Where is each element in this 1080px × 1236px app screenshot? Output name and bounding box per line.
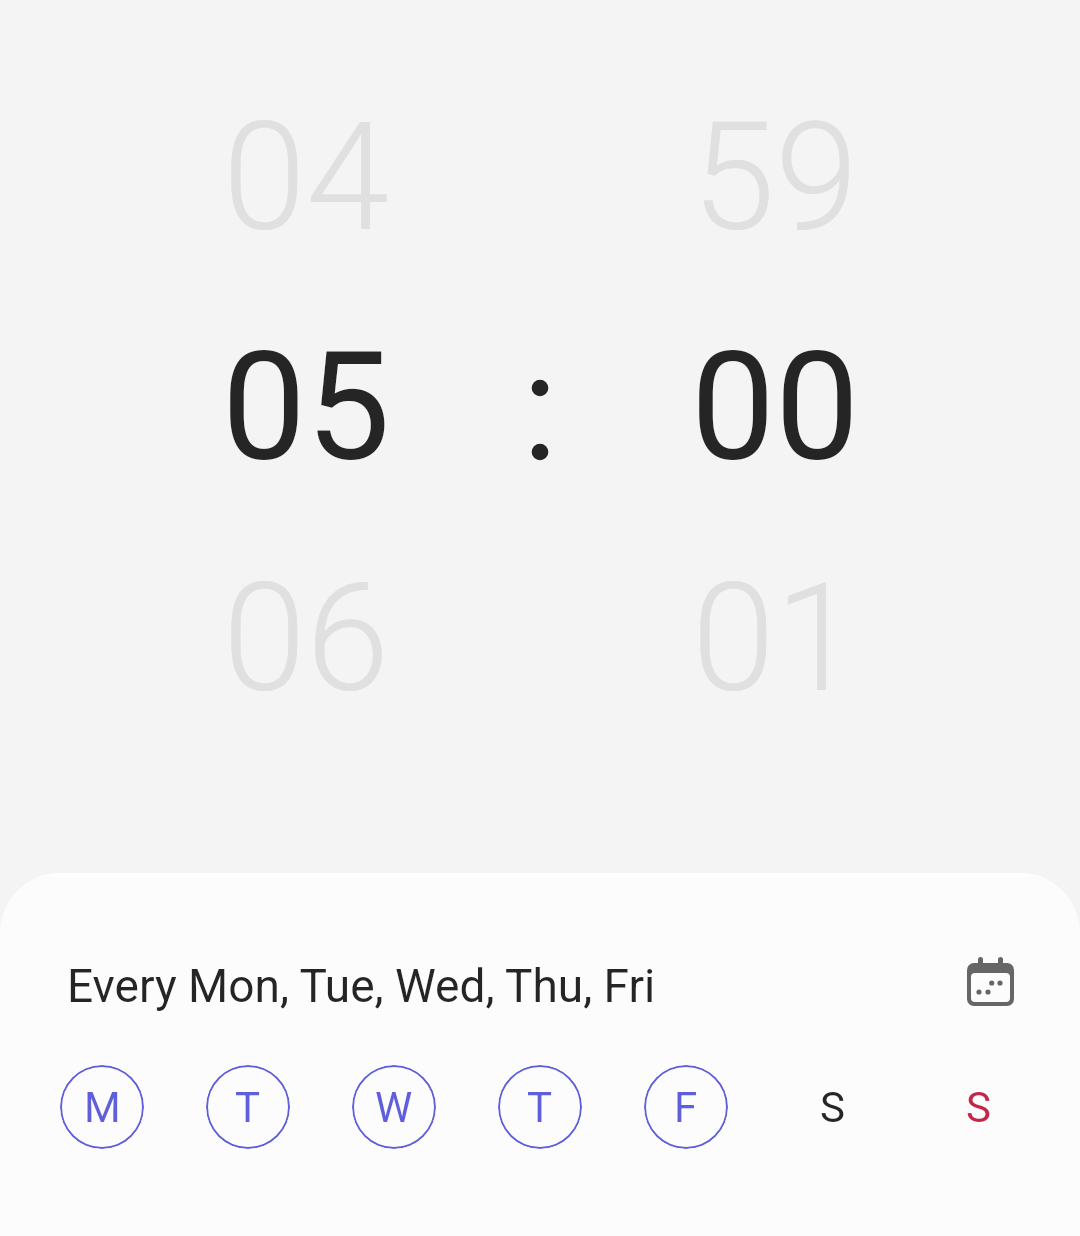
button[interactable]: Monday [60, 1065, 144, 1149]
staticText: T [235, 1083, 261, 1132]
staticText: W [375, 1083, 413, 1132]
staticText: 59 [575, 90, 975, 266]
button[interactable]: Wednesday [352, 1065, 436, 1149]
staticText: 01 [575, 551, 975, 727]
button[interactable]: Hour, 05 [156, 90, 456, 760]
staticText: M [84, 1083, 121, 1132]
staticText: S [966, 1083, 991, 1132]
staticText: 04 [106, 90, 506, 266]
button[interactable]: Thursday [498, 1065, 582, 1149]
button[interactable]: Every Mon, Tue, Wed, Thu, Fri [67, 959, 656, 1013]
staticText: 00 [575, 320, 975, 496]
staticText: S [820, 1083, 845, 1132]
button[interactable]: Minute, 00 [625, 90, 925, 760]
button[interactable]: Saturday [790, 1065, 874, 1149]
staticText: 05 [106, 320, 506, 496]
button[interactable]: Choose date [955, 951, 1027, 1023]
staticText: T [527, 1083, 553, 1132]
button[interactable]: Tuesday [206, 1065, 290, 1149]
staticText: Every Mon, Tue, Wed, Thu, Fri [67, 959, 656, 1013]
button[interactable]: Sunday [936, 1065, 1020, 1149]
staticText: 06 [106, 551, 506, 727]
staticText: F [674, 1083, 698, 1132]
button[interactable]: Friday [644, 1065, 728, 1149]
